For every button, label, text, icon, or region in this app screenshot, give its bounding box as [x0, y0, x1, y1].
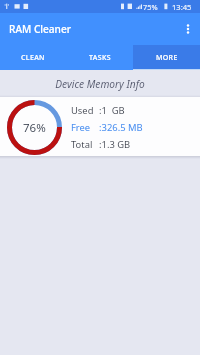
staticText: MORE [156, 53, 178, 63]
button[interactable]: TASKS [66, 45, 133, 70]
staticText: :1.3 GB [99, 138, 131, 151]
staticText: CLEAN [21, 53, 45, 63]
button[interactable]: CLEAN [0, 45, 66, 70]
staticText: Used [71, 104, 99, 117]
staticText: TASKS [89, 53, 111, 63]
staticText: Device Memory Info [0, 77, 200, 91]
staticText: 75% [143, 2, 158, 12]
staticText: 13:45 [172, 2, 192, 12]
staticText: Free [71, 121, 99, 134]
staticText: RAM Cleaner [9, 22, 71, 36]
button[interactable]: More options [176, 13, 200, 45]
button[interactable]: MORE [133, 45, 200, 70]
staticText: :326.5 MB [99, 121, 143, 134]
staticText: Total [71, 138, 99, 151]
staticText: :1 GB [99, 104, 125, 117]
staticText: 76% [23, 120, 46, 136]
